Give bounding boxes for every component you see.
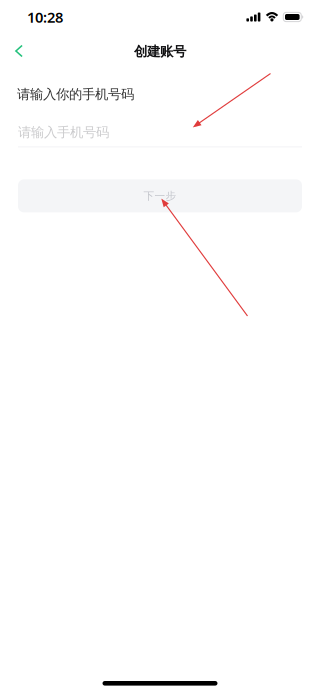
button[interactable]: Back (0, 32, 38, 66)
staticText: 下一步 (143, 189, 176, 202)
button[interactable]: 下一步 (18, 179, 302, 212)
button[interactable]: 请输入手机号码 (18, 125, 302, 147)
staticText: 10:28 (27, 7, 63, 27)
staticText: 创建账号 (134, 43, 186, 60)
staticText: 请输入手机号码 (18, 124, 109, 141)
staticText: 请输入你的手机号码 (17, 86, 134, 102)
